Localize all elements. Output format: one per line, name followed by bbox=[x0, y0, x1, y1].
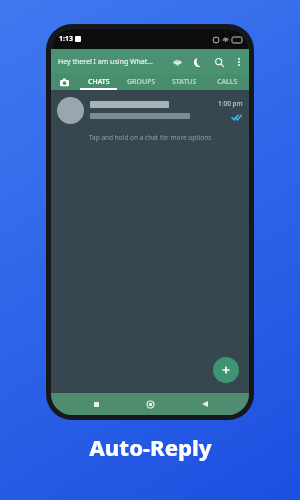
staticText: CHATS bbox=[88, 77, 110, 87]
button[interactable]: STATUS bbox=[163, 74, 206, 90]
button[interactable]: Camera bbox=[51, 74, 77, 90]
staticText: Tap and hold on a chat for more options bbox=[89, 133, 212, 142]
staticText: Auto-Reply bbox=[89, 432, 212, 462]
button[interactable]: Search bbox=[212, 55, 226, 69]
button[interactable]: More options bbox=[233, 56, 245, 68]
button[interactable]: Home bbox=[140, 394, 160, 414]
button[interactable]: Night mode bbox=[191, 55, 205, 69]
button[interactable]: 1:00 pm bbox=[51, 90, 249, 130]
staticText: Hey there! I am using What... bbox=[58, 57, 153, 67]
staticText: STATUS bbox=[172, 77, 197, 87]
staticText: 1:13 bbox=[59, 34, 73, 44]
staticText: 1:00 pm bbox=[218, 99, 243, 108]
button[interactable]: Wi-Fi bbox=[170, 55, 184, 69]
staticText: CALLS bbox=[217, 77, 238, 87]
button[interactable]: Back bbox=[195, 394, 215, 414]
button[interactable]: CALLS bbox=[206, 74, 249, 90]
button[interactable]: CHATS bbox=[77, 74, 120, 90]
button[interactable]: Recents bbox=[86, 394, 106, 414]
staticText: GROUPS bbox=[127, 77, 156, 87]
button[interactable]: GROUPS bbox=[120, 74, 163, 90]
button[interactable]: New chat bbox=[213, 357, 239, 383]
